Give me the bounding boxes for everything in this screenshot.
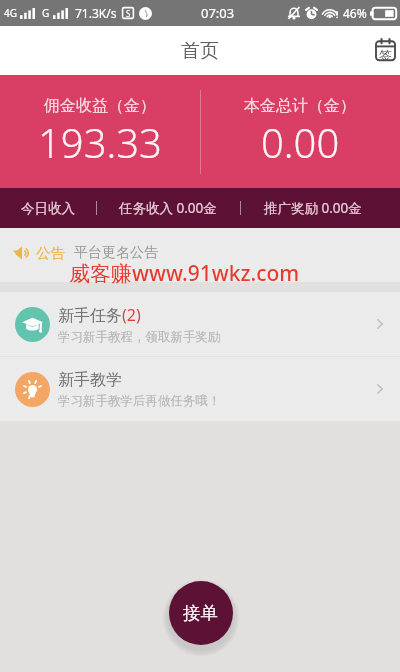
staticText: 威客赚www.91wkz.com — [69, 259, 300, 288]
staticText: 本金总计（金） — [244, 96, 356, 116]
button[interactable]: 任务收入 0.00金 — [96, 188, 240, 228]
staticText: 46% — [343, 5, 367, 21]
staticText: 4G — [4, 6, 17, 20]
button[interactable]: 接单 — [169, 581, 233, 645]
button[interactable]: 公告 — [0, 228, 400, 282]
button[interactable]: 新手教学 — [0, 357, 400, 421]
staticText: 193.33 — [38, 115, 162, 169]
button[interactable]: 签到 — [364, 30, 400, 68]
staticText: 公告 — [36, 244, 65, 262]
staticText: 学习新手教程，领取新手奖励 — [58, 329, 221, 345]
staticText: 平台更名公告 — [74, 244, 158, 262]
button[interactable]: 新手任务(2) — [0, 292, 400, 356]
staticText: 07:03 — [201, 4, 235, 22]
staticText: 新手任务(2) — [58, 304, 141, 326]
staticText: G — [42, 6, 50, 20]
staticText: 推广奖励 0.00金 — [264, 199, 362, 217]
staticText: 71.3K/s — [75, 5, 117, 21]
staticText: 新手教学 — [58, 370, 122, 390]
staticText: S — [126, 8, 131, 19]
staticText: 0.00 — [261, 115, 340, 169]
staticText: 接单 — [183, 602, 218, 624]
button[interactable]: 今日收入 — [0, 188, 96, 228]
staticText: 佣金收益（金） — [44, 96, 156, 116]
staticText: 首页 — [181, 39, 219, 63]
staticText: 学习新手教学后再做任务哦！ — [58, 393, 221, 409]
button[interactable]: 推广奖励 0.00金 — [240, 188, 386, 228]
staticText: 签 — [379, 47, 392, 63]
staticText: 今日收入 — [21, 200, 75, 217]
staticText: 任务收入 0.00金 — [119, 199, 217, 217]
